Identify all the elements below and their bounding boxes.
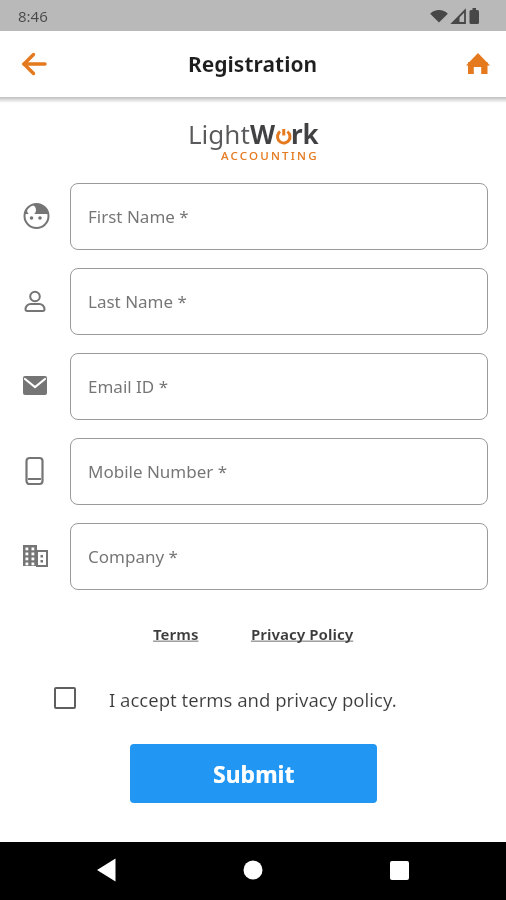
- staticText: Email ID *: [88, 375, 169, 398]
- button[interactable]: Terms: [153, 624, 199, 644]
- button[interactable]: [14, 44, 54, 84]
- button[interactable]: Privacy Policy: [251, 624, 354, 644]
- button[interactable]: [378, 848, 422, 892]
- staticText: Submit: [213, 758, 295, 789]
- button[interactable]: First Name *: [70, 183, 488, 250]
- button[interactable]: [458, 47, 498, 87]
- staticText: ACCOUNTING: [221, 148, 319, 164]
- staticText: Company *: [88, 545, 178, 568]
- button[interactable]: Company *: [70, 523, 488, 590]
- staticText: I accept terms and privacy policy.: [109, 687, 397, 712]
- staticText: W: [250, 116, 276, 151]
- button[interactable]: [54, 687, 76, 709]
- button[interactable]: [86, 848, 130, 892]
- staticText: Mobile Number *: [88, 460, 228, 483]
- staticText: Registration: [188, 50, 318, 79]
- staticText: rk: [291, 116, 319, 151]
- button[interactable]: Last Name *: [70, 268, 488, 335]
- button[interactable]: Mobile Number *: [70, 438, 488, 505]
- button[interactable]: [231, 848, 275, 892]
- staticText: Last Name *: [88, 290, 187, 313]
- staticText: First Name *: [88, 205, 189, 228]
- button[interactable]: Submit: [130, 744, 377, 803]
- staticText: 8:46: [18, 6, 48, 26]
- button[interactable]: Email ID *: [70, 353, 488, 420]
- staticText: Light: [188, 116, 250, 151]
